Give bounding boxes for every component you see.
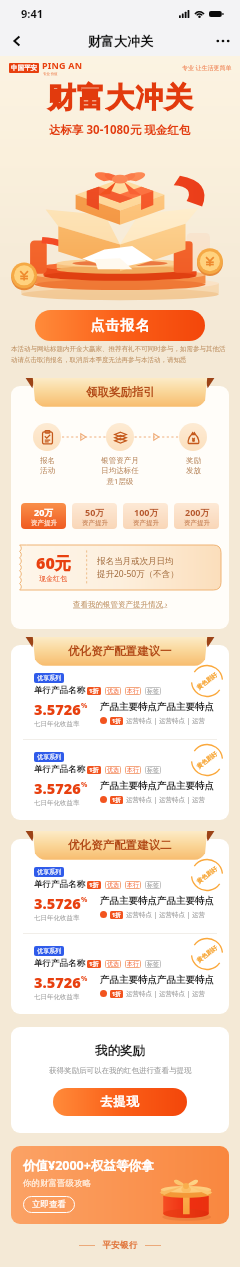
staticText: 领取奖励指引 <box>86 385 155 399</box>
staticText: 标签 <box>147 766 159 774</box>
staticText: 1折 <box>89 766 99 774</box>
staticText: 产品主要特点产品主要特点 <box>100 974 214 986</box>
button[interactable]: 查看我的银管资产提升情况 › <box>11 599 229 609</box>
staticText: 50万 <box>85 506 105 518</box>
staticText: 标签 <box>147 960 159 968</box>
staticText: 获得奖励后可以在我的红包进行查看与提现 <box>49 1066 192 1075</box>
button[interactable]: 200万 <box>174 503 219 529</box>
staticText: 我的奖励 <box>95 1043 145 1059</box>
staticText: 1折 <box>89 960 99 968</box>
staticText: 运营特点 | 运营特点 | 运营 <box>126 989 205 998</box>
staticText: 本行 <box>127 881 139 889</box>
staticText: 1折 <box>112 990 121 998</box>
staticText: 优享系列 <box>37 868 61 876</box>
staticText: PING AN <box>42 59 83 71</box>
staticText: 中国平安 <box>11 64 37 72</box>
staticText: 黄色剧好 <box>195 749 219 771</box>
staticText: 报名 活动 <box>40 456 55 476</box>
staticText: 单行产品名称 <box>34 764 85 775</box>
staticText: 去提现 <box>100 1094 140 1110</box>
staticText: 1折 <box>112 911 121 919</box>
staticText: 优享系列 <box>37 947 61 955</box>
staticText: 1折 <box>89 687 99 695</box>
button[interactable]: Back <box>5 29 29 53</box>
staticText: 你的财富晋级攻略 <box>23 1178 91 1189</box>
staticText: 优选 <box>107 766 119 774</box>
staticText: 3.5726 <box>34 972 81 992</box>
staticText: 资产提升 <box>133 519 159 527</box>
staticText: 单行产品名称 <box>34 685 85 696</box>
staticText: 60元 <box>36 552 71 574</box>
button[interactable]: 优享系列 <box>11 934 229 1012</box>
staticText: 200万 <box>185 506 210 518</box>
staticText: 财富大冲关 <box>47 80 193 115</box>
staticText: % <box>81 701 88 711</box>
staticText: 1折 <box>112 717 121 725</box>
staticText: 专业 价值 <box>43 71 58 76</box>
staticText: 资产提升 <box>31 519 57 527</box>
staticText: 标签 <box>147 881 159 889</box>
staticText: 运营特点 | 运营特点 | 运营 <box>126 795 205 804</box>
button[interactable]: 优享系列 <box>11 855 229 933</box>
staticText: 本行 <box>127 960 139 968</box>
staticText: 3.5726 <box>34 778 81 798</box>
staticText: 奖励 发放 <box>186 456 201 476</box>
staticText: 优选 <box>107 881 119 889</box>
staticText: 3.5726 <box>34 893 81 913</box>
staticText: 立即查看 <box>32 1199 66 1210</box>
staticText: 七日年化收益率 <box>34 993 80 1001</box>
staticText: 优享系列 <box>37 753 61 761</box>
staticText: 专业 让生活更简单 <box>182 64 232 72</box>
staticText: 100万 <box>134 506 159 518</box>
staticText: 优化资产配置建议二 <box>68 838 172 852</box>
staticText: 优选 <box>107 687 119 695</box>
staticText: 七日年化收益率 <box>34 720 80 728</box>
staticText: 财富大冲关 <box>88 33 153 49</box>
staticText: 9:41 <box>21 6 43 21</box>
staticText: 平安银行 <box>102 1240 138 1251</box>
staticText: 优化资产配置建议一 <box>68 644 172 658</box>
staticText: 黄色剧好 <box>195 943 219 965</box>
staticText: 标签 <box>147 687 159 695</box>
staticText: 现金红包 <box>39 574 67 583</box>
staticText: % <box>81 895 88 905</box>
staticText: 查看我的银管资产提升情况 › <box>73 599 168 609</box>
staticText: 产品主要特点产品主要特点 <box>100 895 214 907</box>
staticText: 点击报名 <box>90 317 150 335</box>
button[interactable]: 价值¥2000+权益等你拿 <box>11 1146 229 1224</box>
staticText: 产品主要特点产品主要特点 <box>100 780 214 792</box>
staticText: 资产提升 <box>82 519 108 527</box>
button[interactable]: 去提现 <box>53 1088 187 1116</box>
staticText: 本行 <box>127 687 139 695</box>
staticText: 报名当月或次月日均 提升20-50万（不含） <box>97 556 179 580</box>
button[interactable]: 优享系列 <box>11 740 229 818</box>
staticText: 单行产品名称 <box>34 879 85 890</box>
staticText: % <box>81 974 88 984</box>
staticText: 优选 <box>107 960 119 968</box>
staticText: 银管资产月 日均达标任 意1层级 <box>101 456 139 486</box>
button[interactable]: More options <box>211 29 235 53</box>
staticText: 价值¥2000+权益等你拿 <box>23 1157 154 1174</box>
button[interactable]: 优享系列 <box>11 661 229 739</box>
staticText: 运营特点 | 运营特点 | 运营 <box>126 716 205 725</box>
button[interactable]: 20万 <box>21 503 66 529</box>
staticText: 单行产品名称 <box>34 958 85 969</box>
staticText: 运营特点 | 运营特点 | 运营 <box>126 910 205 919</box>
button[interactable]: 100万 <box>123 503 168 529</box>
staticText: 七日年化收益率 <box>34 799 80 807</box>
staticText: 1折 <box>112 796 121 804</box>
staticText: 达标享 30-1080元 现金红包 <box>49 122 191 138</box>
staticText: 优享系列 <box>37 674 61 682</box>
staticText: 本行 <box>127 766 139 774</box>
staticText: 产品主要特点产品主要特点 <box>100 701 214 713</box>
button[interactable]: 50万 <box>72 503 117 529</box>
staticText: % <box>81 780 88 790</box>
staticText: 本活动与网站标题内开金大赢家、推荐有礼不可同时参与，如需参与其他活动请点击取消报… <box>11 345 229 364</box>
staticText: 1折 <box>89 881 99 889</box>
staticText: 3.5726 <box>34 699 81 719</box>
button[interactable]: 点击报名 <box>35 310 205 341</box>
staticText: 20万 <box>34 506 54 518</box>
staticText: 资产提升 <box>184 519 210 527</box>
staticText: 七日年化收益率 <box>34 914 80 922</box>
staticText: 黄色剧好 <box>195 864 219 886</box>
